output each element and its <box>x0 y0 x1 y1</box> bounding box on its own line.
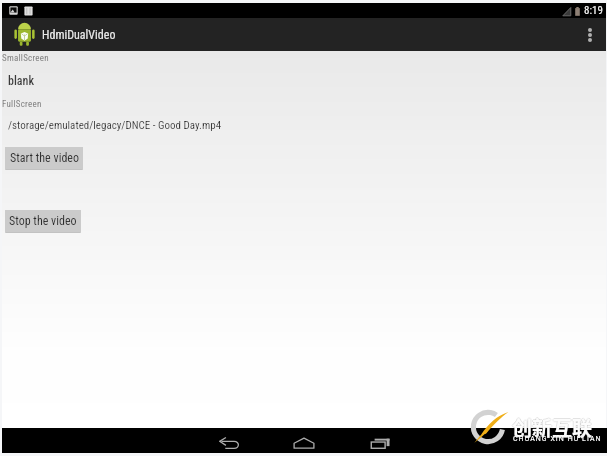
button[interactable]: Stop the video <box>5 210 81 232</box>
staticText: CHUANG XIN HU LIAN <box>513 434 602 442</box>
staticText: 创新互联 <box>511 413 591 442</box>
staticText: SmallScreen <box>2 53 49 64</box>
button[interactable]: Start the video <box>5 147 83 169</box>
staticText: Start the video <box>10 151 79 165</box>
button[interactable]: More options <box>575 18 605 51</box>
staticText: 创新互联 <box>513 413 593 442</box>
staticText: 创新互联 <box>512 412 592 441</box>
staticText: CHUANG XIN HU LIAN <box>512 435 601 443</box>
staticText: 创新互联 <box>512 413 592 442</box>
staticText: Stop the video <box>9 214 77 228</box>
staticText: HdmiDualVideo <box>42 28 116 42</box>
button[interactable]: Home <box>280 428 328 453</box>
staticText: CHUANG XIN HU LIAN <box>513 436 602 444</box>
staticText: 创新互联 <box>512 414 592 443</box>
staticText: CHUANG XIN HU LIAN <box>513 435 602 443</box>
button[interactable]: Recent apps <box>356 428 404 453</box>
staticText: 8:19 <box>584 4 603 17</box>
staticText: blank <box>8 74 34 88</box>
staticText: FullScreen <box>2 99 42 110</box>
staticText: /storage/emulated/legacy/DNCE - Good Day… <box>8 119 222 132</box>
button[interactable]: Back <box>205 428 253 453</box>
staticText: CHUANG XIN HU LIAN <box>514 435 603 443</box>
